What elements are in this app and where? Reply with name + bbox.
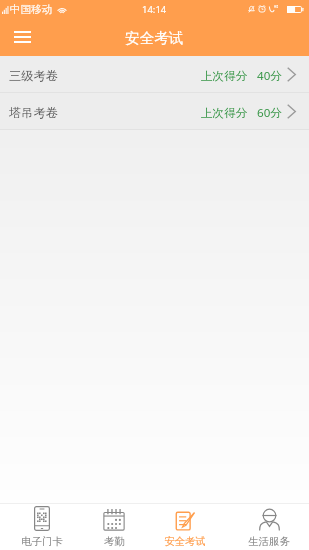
staticText: 中国移动 [10, 3, 52, 16]
staticText: 塔吊考卷 [9, 105, 59, 120]
button[interactable]: Menu [7, 22, 37, 52]
staticText: 上次得分 [201, 69, 248, 84]
button[interactable]: 塔吊考卷 [0, 93, 309, 129]
staticText: 60分 [257, 105, 282, 121]
button[interactable]: 生活服务 [230, 504, 308, 550]
button[interactable]: 电子门卡 [3, 504, 80, 550]
staticText: 40分 [257, 68, 282, 84]
button[interactable]: 三级考卷 [0, 56, 309, 92]
staticText: 考勤 [104, 535, 125, 548]
staticText: 14:14 [142, 3, 167, 16]
button[interactable]: 安全考试 [147, 504, 223, 550]
staticText: 电子门卡 [21, 535, 63, 548]
staticText: 生活服务 [248, 535, 290, 548]
staticText: 三级考卷 [9, 68, 59, 83]
button[interactable]: 考勤 [77, 504, 151, 550]
staticText: 安全考试 [125, 29, 184, 47]
staticText: 安全考试 [164, 535, 206, 548]
staticText: 上次得分 [201, 106, 248, 121]
